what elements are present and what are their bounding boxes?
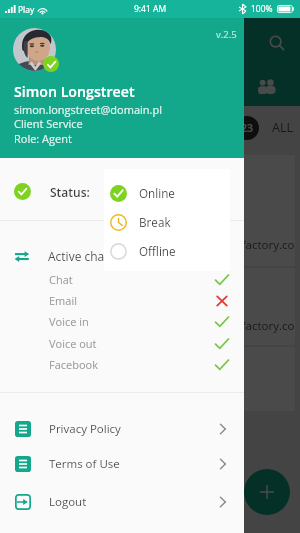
staticText: 100%: [251, 3, 273, 15]
staticText: simon.longstreet@domain.pl: [14, 102, 162, 117]
staticText: Active channels: [48, 248, 135, 264]
button[interactable]: Terms of Use: [0, 447, 244, 480]
button[interactable]: Active channels: [0, 241, 244, 271]
button[interactable]: Online: [104, 181, 230, 205]
staticText: Email: [49, 293, 77, 308]
button[interactable]: Logout: [0, 485, 244, 518]
button[interactable]: Break: [104, 210, 230, 234]
button[interactable]: Status:: [0, 163, 244, 220]
button[interactable]: Contacts: [258, 79, 280, 93]
button[interactable]: Add: [244, 469, 290, 515]
staticText: Role: Agent: [14, 131, 72, 146]
staticText: Simon Longstreet: [14, 82, 135, 101]
staticText: Terms of Use: [49, 456, 120, 472]
button[interactable]: Search: [263, 29, 291, 57]
staticText: Voice out: [49, 336, 97, 351]
button[interactable]: Offline: [104, 239, 230, 263]
button[interactable]: [5, 347, 295, 411]
staticText: Online: [139, 185, 175, 201]
staticText: name.surname@factory.com: [150, 237, 295, 253]
button[interactable]: Chat: [0, 269, 244, 290]
staticText: Facebook: [49, 357, 98, 372]
staticText: Play: [18, 4, 35, 16]
staticText: Logout: [49, 494, 87, 510]
staticText: Privacy Policy: [49, 421, 121, 437]
staticText: v.2.5: [216, 28, 237, 41]
staticText: Offline: [139, 243, 176, 259]
button[interactable]: Email: [0, 290, 244, 311]
button[interactable]: Facebook: [0, 354, 244, 375]
staticText: 23: [241, 121, 254, 135]
staticText: Client Service: [14, 116, 83, 131]
button[interactable]: name.surname@factory.com: [5, 155, 295, 266]
staticText: 9:41 AM: [134, 3, 167, 15]
staticText: ALL: [272, 119, 293, 136]
staticText: Voice in: [49, 314, 89, 329]
button[interactable]: Voice in: [0, 311, 244, 332]
staticText: name.surname@factory.com: [150, 318, 295, 334]
staticText: Break: [139, 214, 171, 230]
button[interactable]: Voice out: [0, 333, 244, 354]
button[interactable]: name.surname@factory.com: [5, 268, 295, 345]
staticText: Status:: [50, 184, 90, 200]
staticText: Chat: [49, 272, 73, 287]
button[interactable]: Privacy Policy: [0, 412, 244, 445]
